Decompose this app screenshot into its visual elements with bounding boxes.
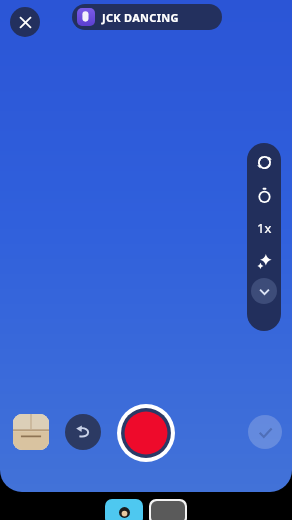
button[interactable]: Close — [10, 7, 40, 37]
button[interactable]: Timer — [251, 182, 277, 208]
button[interactable] — [149, 499, 187, 520]
button[interactable] — [105, 499, 143, 520]
button[interactable]: Undo — [65, 414, 101, 450]
button[interactable]: More options — [251, 278, 277, 304]
staticText: 1x — [257, 219, 272, 237]
button[interactable]: Record — [117, 404, 175, 462]
button[interactable]: Effects — [251, 248, 277, 274]
button[interactable]: 1x — [251, 215, 277, 241]
button[interactable]: Flip camera — [251, 149, 277, 175]
button[interactable]: Gallery — [13, 414, 49, 450]
button[interactable]: JCK DANCING TUTORI — [72, 4, 222, 30]
staticText: JCK DANCING TUTORI — [102, 10, 222, 25]
button[interactable]: Done — [248, 415, 282, 449]
